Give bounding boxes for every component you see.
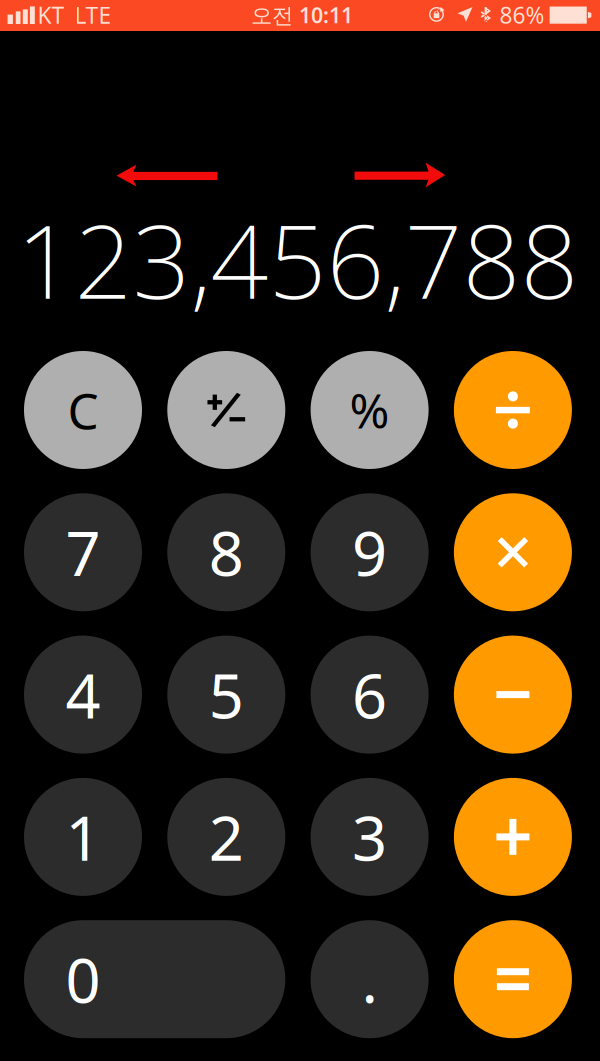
- staticText: KT: [37, 0, 64, 30]
- staticText: LTE: [74, 0, 111, 30]
- button[interactable]: Percent: [311, 351, 429, 469]
- button[interactable]: Equals: [454, 920, 572, 1038]
- button[interactable]: 1: [24, 778, 142, 896]
- staticText: 8: [209, 512, 244, 593]
- button[interactable]: .: [311, 920, 429, 1038]
- button[interactable]: 3: [311, 778, 429, 896]
- staticText: %: [350, 378, 390, 442]
- staticText: 6: [352, 654, 387, 735]
- staticText: 3: [352, 796, 387, 878]
- button[interactable]: 5: [167, 636, 285, 754]
- button[interactable]: 7: [24, 493, 142, 611]
- button[interactable]: Multiply: [454, 493, 572, 611]
- button[interactable]: Plus minus: [167, 351, 285, 469]
- button[interactable]: 8: [167, 493, 285, 611]
- button[interactable]: Clear: [24, 351, 142, 469]
- staticText: 7: [65, 512, 100, 593]
- staticText: 4: [65, 654, 100, 735]
- button[interactable]: 4: [24, 636, 142, 754]
- staticText: 2: [209, 796, 244, 878]
- staticText: 86%: [499, 0, 544, 30]
- button[interactable]: Divide: [454, 351, 572, 469]
- staticText: 오전 10:11: [251, 1, 353, 29]
- button[interactable]: 0: [24, 920, 285, 1038]
- staticText: 5: [209, 654, 244, 735]
- staticText: 9: [352, 512, 387, 593]
- button[interactable]: Minus: [454, 636, 572, 754]
- staticText: C: [67, 377, 98, 443]
- button[interactable]: 9: [311, 493, 429, 611]
- button[interactable]: Plus: [454, 778, 572, 896]
- staticText: 1: [65, 796, 100, 878]
- button[interactable]: 2: [167, 778, 285, 896]
- staticText: .: [362, 938, 378, 1020]
- staticText: 123,456,788: [16, 192, 578, 327]
- staticText: 0: [65, 938, 100, 1020]
- button[interactable]: 6: [311, 636, 429, 754]
